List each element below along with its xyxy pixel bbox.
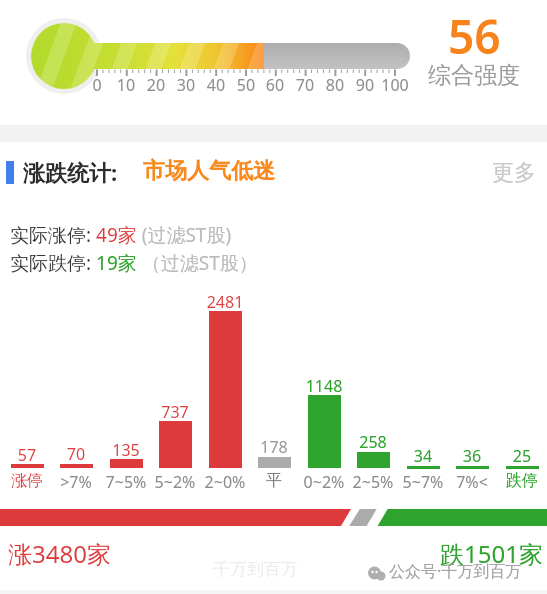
staticText: 258 xyxy=(343,431,403,453)
staticText: 60 xyxy=(255,74,295,96)
staticText: 100 xyxy=(375,74,415,96)
staticText: 70 xyxy=(46,443,106,465)
staticText: 跌1501家 xyxy=(0,537,543,570)
staticText: 20 xyxy=(136,74,176,96)
staticText: >7% xyxy=(46,471,106,493)
staticText: 34 xyxy=(393,445,453,467)
staticText: 56 xyxy=(448,5,501,68)
staticText: 1148 xyxy=(294,375,354,397)
staticText: 36 xyxy=(442,445,502,467)
staticText: 实际跌停: 19家 （过滤ST股） xyxy=(10,250,258,276)
staticText: 0 xyxy=(77,74,117,96)
staticText: 90 xyxy=(345,74,385,96)
staticText: 80 xyxy=(315,74,355,96)
staticText: 7~5% xyxy=(96,471,156,493)
staticText: 公众号·千万到百万 xyxy=(389,560,522,582)
staticText: 50 xyxy=(226,74,266,96)
button[interactable]: 涨跌统计: xyxy=(0,150,547,195)
staticText: 跌停 xyxy=(492,471,547,491)
staticText: 40 xyxy=(196,74,236,96)
staticText: 7%< xyxy=(442,471,502,493)
staticText: 综合强度 xyxy=(428,61,520,90)
staticText: 2481 xyxy=(195,291,255,313)
staticText: 2~0% xyxy=(195,471,255,493)
staticText: 涨跌统计: xyxy=(23,157,118,187)
staticText: 千万到百万 xyxy=(213,559,298,580)
staticText: 2~5% xyxy=(343,471,403,493)
staticText: 实际涨停: 49家 (过滤ST股) xyxy=(10,222,232,248)
staticText: 30 xyxy=(166,74,206,96)
staticText: 70 xyxy=(285,74,325,96)
staticText: 涨停 xyxy=(0,471,57,491)
staticText: 平 xyxy=(244,471,304,491)
staticText: 市场人气低迷 xyxy=(143,157,275,185)
staticText: 135 xyxy=(96,439,156,461)
staticText: 更多 xyxy=(492,159,536,187)
staticText: 737 xyxy=(145,401,205,423)
staticText: 涨3480家 xyxy=(8,537,111,570)
staticText: 57 xyxy=(0,444,57,466)
staticText: 10 xyxy=(106,74,146,96)
staticText: 25 xyxy=(492,445,547,467)
staticText: 0~2% xyxy=(294,471,354,493)
staticText: 5~2% xyxy=(145,471,205,493)
button[interactable] xyxy=(0,280,547,495)
button[interactable] xyxy=(0,0,547,594)
staticText: 178 xyxy=(244,436,304,458)
staticText: 5~7% xyxy=(393,471,453,493)
